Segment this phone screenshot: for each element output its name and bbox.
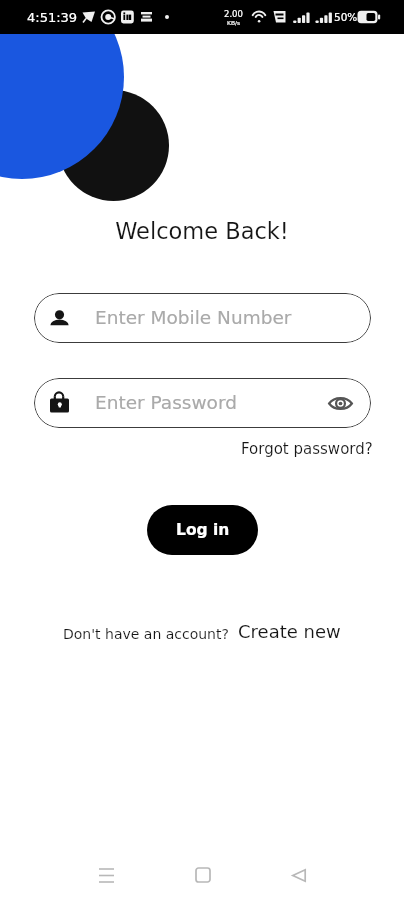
staticText: Log in [176,521,230,539]
staticText: Forgot password? [241,440,373,457]
button[interactable]: Show password [320,383,360,423]
staticText: Welcome Back! [0,218,404,244]
staticText: 4:51:39 [27,10,78,25]
staticText: 50% [334,11,358,23]
staticText: Enter Password [95,392,237,414]
button[interactable]: Enter Mobile Number [34,293,371,343]
button[interactable]: Create new [238,621,341,642]
button[interactable]: Back [277,853,321,897]
staticText: Create new [238,621,341,642]
staticText: Don't have an account? [63,626,229,642]
button[interactable]: Recents [84,853,128,897]
staticText: KB/s [227,19,241,26]
button[interactable]: Home [181,853,225,897]
button[interactable]: Log in [147,505,258,555]
staticText: 2.00 [224,9,243,19]
staticText: Enter Mobile Number [95,307,292,329]
button[interactable]: Enter Password [34,378,371,428]
button[interactable]: Forgot password? [241,440,373,457]
